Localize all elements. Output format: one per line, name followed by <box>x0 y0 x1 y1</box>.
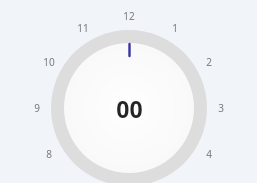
staticText: 11 <box>77 21 89 35</box>
staticText: 2 <box>206 55 212 69</box>
staticText: 12 <box>123 9 135 23</box>
button[interactable]: 1 <box>163 20 187 36</box>
staticText: 8 <box>46 147 52 161</box>
staticText: 3 <box>218 101 224 115</box>
staticText: 9 <box>34 101 40 115</box>
staticText: 1 <box>172 21 178 35</box>
button[interactable]: 00 <box>89 92 169 124</box>
staticText: 00 <box>116 93 143 124</box>
button[interactable]: 9 <box>25 100 49 116</box>
button[interactable]: 2 <box>197 54 221 70</box>
button[interactable]: 12 <box>117 8 141 24</box>
button[interactable]: 3 <box>209 100 233 116</box>
staticText: 10 <box>43 55 55 69</box>
staticText: 4 <box>206 147 212 161</box>
button[interactable]: 4 <box>197 146 221 162</box>
button[interactable]: 8 <box>37 146 61 162</box>
button[interactable]: 11 <box>71 20 95 36</box>
button[interactable]: 10 <box>37 54 61 70</box>
